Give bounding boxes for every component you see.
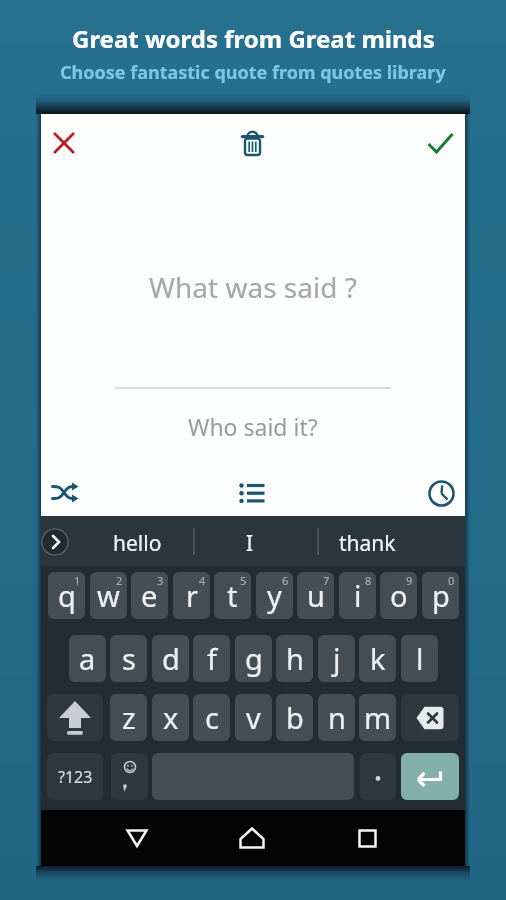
- button[interactable]: g: [235, 635, 272, 682]
- button[interactable]: y: [256, 572, 293, 619]
- button[interactable]: e: [131, 572, 168, 619]
- staticText: 7: [323, 573, 330, 588]
- staticText: v: [246, 698, 261, 737]
- staticText: k: [370, 639, 386, 678]
- button[interactable]: [107, 818, 167, 858]
- staticText: o: [390, 576, 408, 615]
- button[interactable]: h: [276, 635, 313, 682]
- button[interactable]: j: [318, 635, 355, 682]
- button[interactable]: thank: [327, 518, 407, 568]
- button[interactable]: o: [380, 572, 417, 619]
- button[interactable]: hello: [97, 518, 177, 568]
- staticText: 2: [116, 573, 123, 588]
- staticText: i: [354, 576, 362, 615]
- button[interactable]: u: [297, 572, 334, 619]
- button[interactable]: r: [173, 572, 210, 619]
- button[interactable]: [428, 480, 455, 507]
- staticText: What was said ?: [149, 268, 357, 306]
- staticText: d: [162, 639, 180, 678]
- staticText: m: [364, 698, 392, 737]
- staticText: ?123: [58, 766, 93, 788]
- staticText: x: [163, 698, 179, 737]
- button[interactable]: n: [318, 694, 355, 741]
- button[interactable]: x: [152, 694, 189, 741]
- staticText: c: [205, 698, 219, 737]
- staticText: 0: [448, 573, 455, 588]
- button[interactable]: p: [422, 572, 459, 619]
- button[interactable]: d: [152, 635, 189, 682]
- staticText: y: [267, 576, 282, 615]
- staticText: Great words from Great minds: [72, 22, 435, 55]
- button[interactable]: [51, 482, 79, 504]
- staticText: f: [207, 639, 217, 678]
- staticText: b: [286, 698, 304, 737]
- button[interactable]: [401, 753, 459, 800]
- staticText: thank: [339, 529, 396, 558]
- staticText: 6: [282, 573, 289, 588]
- staticText: n: [328, 698, 346, 737]
- button[interactable]: k: [359, 635, 396, 682]
- staticText: h: [286, 639, 304, 678]
- staticText: j: [333, 639, 341, 678]
- button[interactable]: l: [401, 635, 438, 682]
- staticText: Who said it?: [188, 411, 318, 442]
- staticText: 8: [365, 573, 372, 588]
- staticText: g: [245, 639, 263, 678]
- staticText: hello: [113, 529, 162, 558]
- button[interactable]: m: [359, 694, 396, 741]
- button[interactable]: ?123: [47, 753, 103, 800]
- button[interactable]: z: [110, 694, 147, 741]
- button[interactable]: [241, 131, 264, 156]
- button[interactable]: t: [214, 572, 251, 619]
- staticText: 3: [157, 573, 164, 588]
- staticText: w: [97, 576, 120, 615]
- staticText: t: [227, 576, 238, 615]
- button[interactable]: [360, 753, 396, 800]
- button[interactable]: a: [69, 635, 106, 682]
- button[interactable]: [239, 484, 266, 502]
- staticText: s: [122, 639, 136, 678]
- button[interactable]: [53, 132, 76, 155]
- staticText: e: [141, 576, 158, 615]
- staticText: 5: [240, 573, 247, 588]
- button[interactable]: b: [276, 694, 313, 741]
- button[interactable]: I: [210, 518, 290, 568]
- button[interactable]: w: [90, 572, 127, 619]
- staticText: 1: [74, 573, 81, 588]
- button[interactable]: [427, 132, 454, 155]
- staticText: 9: [406, 573, 413, 588]
- button[interactable]: f: [193, 635, 230, 682]
- button[interactable]: [41, 528, 69, 556]
- staticText: Choose fantastic quote from quotes libra…: [60, 60, 446, 85]
- staticText: a: [79, 639, 96, 678]
- button[interactable]: s: [110, 635, 147, 682]
- button[interactable]: [337, 818, 397, 858]
- staticText: r: [186, 576, 198, 615]
- button[interactable]: i: [339, 572, 376, 619]
- staticText: q: [58, 576, 76, 615]
- button[interactable]: [47, 694, 103, 741]
- staticText: u: [307, 576, 325, 615]
- button[interactable]: [222, 818, 282, 858]
- staticText: l: [416, 639, 424, 678]
- staticText: z: [122, 698, 136, 737]
- staticText: p: [432, 576, 450, 615]
- staticText: 4: [199, 573, 206, 588]
- button[interactable]: q: [48, 572, 85, 619]
- button[interactable]: v: [235, 694, 272, 741]
- button[interactable]: c: [193, 694, 230, 741]
- button[interactable]: [111, 753, 148, 800]
- button[interactable]: [401, 694, 459, 741]
- staticText: I: [246, 529, 254, 558]
